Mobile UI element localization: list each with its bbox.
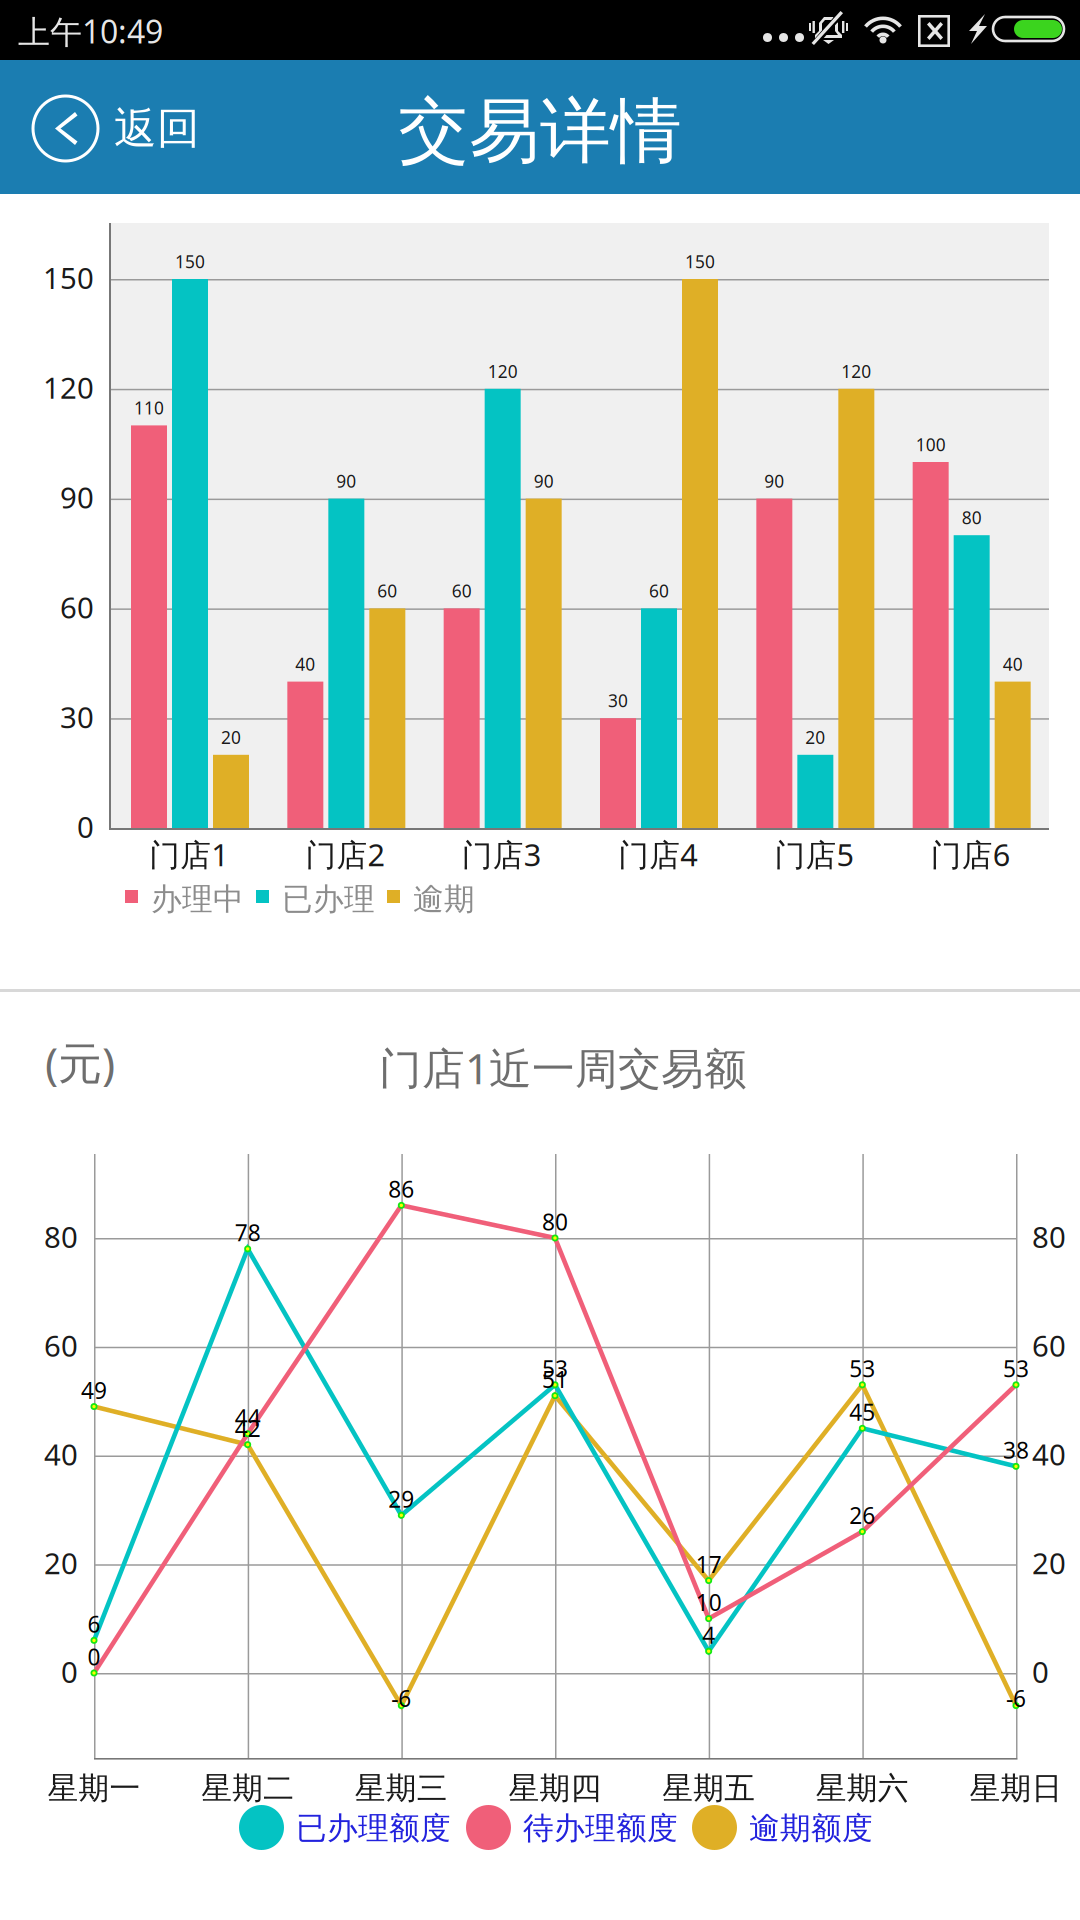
staticText: 90 bbox=[336, 469, 356, 492]
staticText: 门店3 bbox=[462, 834, 542, 875]
staticText: 53 bbox=[1003, 1353, 1029, 1383]
staticText: 30 bbox=[608, 689, 628, 712]
staticText: 120 bbox=[841, 360, 871, 383]
staticText: 40 bbox=[295, 652, 315, 675]
staticText: (元) bbox=[45, 1033, 115, 1092]
staticText: 26 bbox=[849, 1500, 875, 1530]
staticText: 60 bbox=[60, 587, 94, 626]
staticText: 53 bbox=[849, 1353, 875, 1383]
staticText: 100 bbox=[916, 433, 946, 456]
staticText: 80 bbox=[44, 1217, 78, 1256]
staticText: 逾期额度 bbox=[749, 1810, 873, 1847]
staticText: -6 bbox=[391, 1683, 411, 1713]
staticText: 门店2 bbox=[305, 834, 385, 875]
staticText: 0 bbox=[77, 807, 94, 846]
staticText: 30 bbox=[60, 697, 94, 736]
staticText: 90 bbox=[60, 478, 94, 517]
staticText: 返回 bbox=[114, 102, 200, 155]
staticText: 待办理额度 bbox=[523, 1810, 678, 1847]
staticText: 20 bbox=[221, 726, 241, 749]
staticText: 门店4 bbox=[618, 834, 698, 875]
staticText: 0 bbox=[87, 1641, 100, 1672]
staticText: 49 bbox=[81, 1375, 107, 1405]
staticText: 45 bbox=[849, 1397, 875, 1427]
staticText: 80 bbox=[542, 1206, 568, 1237]
staticText: 0 bbox=[61, 1652, 78, 1691]
staticText: 80 bbox=[1032, 1217, 1066, 1256]
staticText: 门店6 bbox=[931, 834, 1011, 875]
staticText: 门店1 bbox=[149, 834, 229, 875]
staticText: 星期五 bbox=[662, 1770, 755, 1807]
staticText: 20 bbox=[44, 1543, 78, 1582]
staticText: 10 bbox=[696, 1587, 722, 1617]
staticText: 门店5 bbox=[774, 834, 854, 875]
staticText: 86 bbox=[388, 1174, 414, 1204]
staticText: 交易详情 bbox=[398, 88, 682, 175]
staticText: 78 bbox=[235, 1217, 261, 1247]
staticText: -6 bbox=[1006, 1683, 1026, 1713]
staticText: 星期三 bbox=[355, 1770, 448, 1807]
staticText: 星期六 bbox=[816, 1770, 909, 1807]
staticText: 4 bbox=[702, 1620, 715, 1650]
staticText: 已办理 bbox=[282, 881, 375, 918]
staticText: 29 bbox=[388, 1484, 414, 1514]
staticText: 17 bbox=[696, 1549, 722, 1579]
staticText: 0 bbox=[1032, 1652, 1049, 1691]
staticText: 20 bbox=[1032, 1543, 1066, 1582]
staticText: 60 bbox=[452, 579, 472, 602]
staticText: 40 bbox=[44, 1435, 78, 1474]
staticText: 110 bbox=[134, 396, 164, 419]
staticText: 办理中 bbox=[151, 881, 244, 918]
staticText: 38 bbox=[1003, 1435, 1029, 1465]
staticText: 门店1近一周交易额 bbox=[379, 1039, 747, 1096]
staticText: 60 bbox=[1032, 1326, 1066, 1365]
staticText: 150 bbox=[43, 258, 94, 297]
staticText: 120 bbox=[43, 368, 94, 407]
staticText: 星期四 bbox=[508, 1770, 601, 1807]
button[interactable]: 返回 bbox=[0, 60, 236, 194]
staticText: 已办理额度 bbox=[296, 1810, 451, 1847]
staticText: 80 bbox=[962, 506, 982, 529]
staticText: 60 bbox=[377, 579, 397, 602]
staticText: 53 bbox=[542, 1353, 568, 1383]
staticText: 42 bbox=[235, 1413, 261, 1443]
staticText: 40 bbox=[1003, 652, 1023, 675]
staticText: 60 bbox=[44, 1326, 78, 1365]
staticText: 逾期 bbox=[413, 881, 475, 918]
staticText: 星期日 bbox=[969, 1770, 1062, 1807]
staticText: 44 bbox=[235, 1402, 261, 1432]
staticText: 星期二 bbox=[201, 1770, 294, 1807]
staticText: 20 bbox=[805, 726, 825, 749]
staticText: 6 bbox=[87, 1609, 100, 1639]
staticText: 90 bbox=[534, 469, 554, 492]
staticText: 150 bbox=[175, 250, 205, 273]
staticText: 90 bbox=[764, 469, 784, 492]
staticText: 150 bbox=[685, 250, 715, 273]
staticText: 60 bbox=[649, 579, 669, 602]
staticText: 上午10:49 bbox=[18, 10, 163, 52]
staticText: 40 bbox=[1032, 1435, 1066, 1474]
staticText: 51 bbox=[542, 1364, 568, 1394]
staticText: 星期一 bbox=[47, 1770, 140, 1807]
staticText: 120 bbox=[488, 360, 518, 383]
